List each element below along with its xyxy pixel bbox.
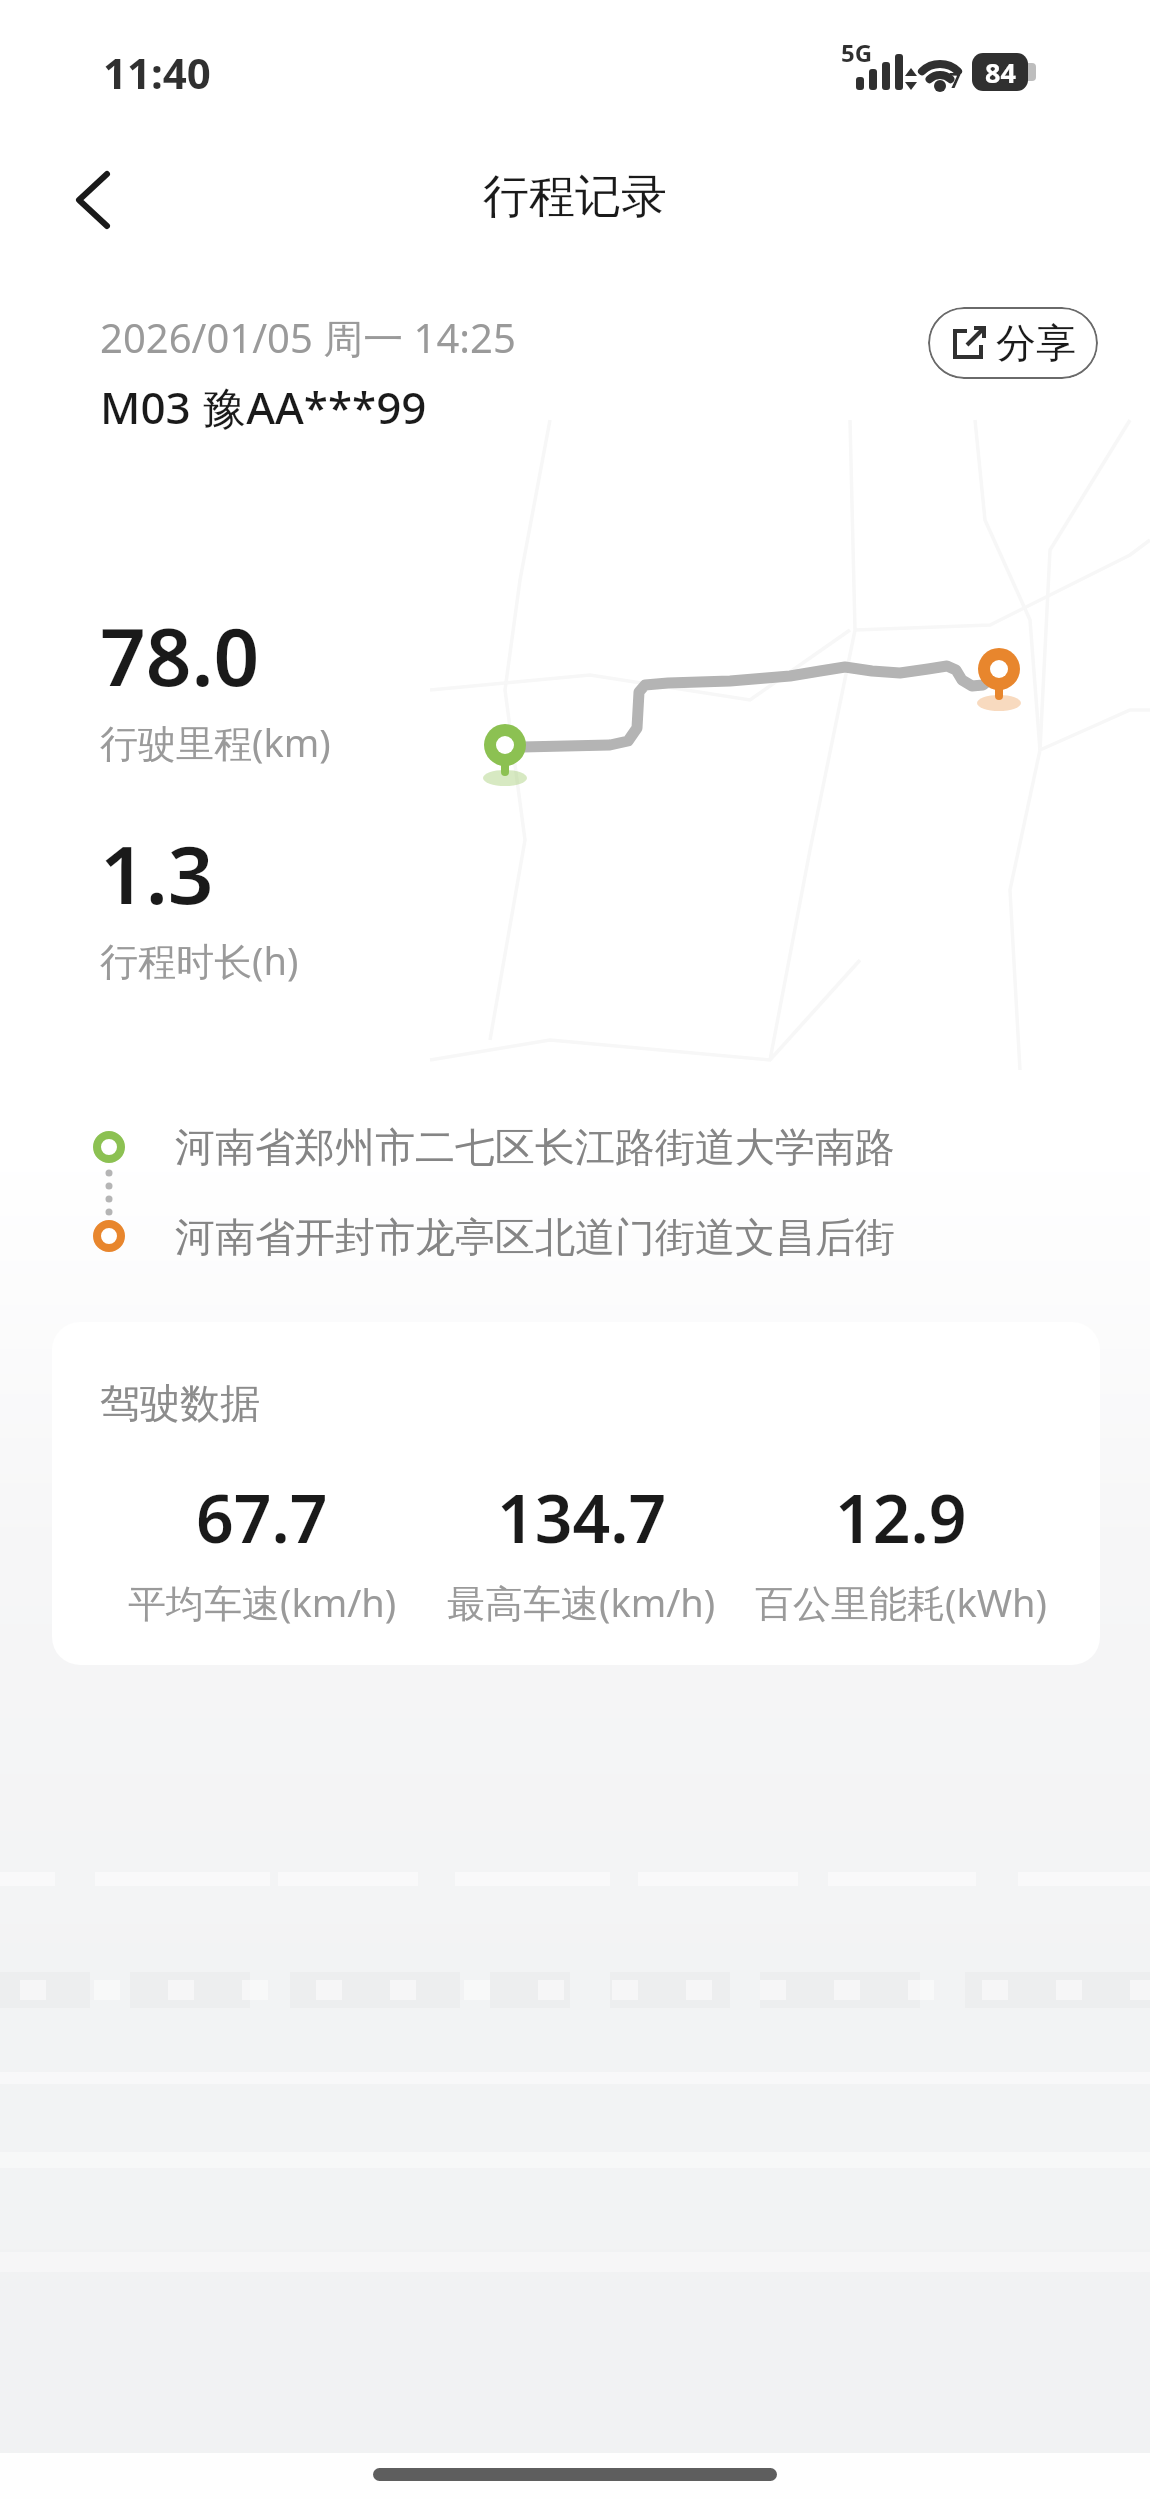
staticText: 河南省开封市龙亭区北道门街道文昌后街 xyxy=(175,1212,895,1262)
staticText: 行程记录 xyxy=(483,168,667,226)
staticText: 河南省郑州市二七区长江路街道大学南路 xyxy=(175,1122,895,1172)
button[interactable]: 分享 xyxy=(928,307,1098,379)
staticText: 1.3 xyxy=(100,818,214,927)
staticText: 分享 xyxy=(996,318,1076,368)
staticText: 百公里能耗(kWh) xyxy=(755,1576,1047,1628)
staticText: 最高车速(km/h) xyxy=(447,1576,716,1628)
staticText: 84 xyxy=(985,54,1016,91)
staticText: 行程时长(h) xyxy=(100,934,299,986)
staticText: 7 xyxy=(949,66,962,95)
staticText: 12.9 xyxy=(835,1472,967,1562)
staticText: 67.7 xyxy=(196,1472,328,1562)
staticText: 78.0 xyxy=(100,600,260,709)
staticText: M03 豫AA***99 xyxy=(100,377,427,437)
staticText: 134.7 xyxy=(497,1472,667,1562)
button[interactable] xyxy=(52,160,132,240)
staticText: 行驶里程(km) xyxy=(100,716,331,768)
staticText: 2026/01/05 周一 14:25 xyxy=(100,310,516,365)
staticText: 11:40 xyxy=(103,44,211,101)
staticText: 5G xyxy=(841,36,873,69)
staticText: 驾驶数据 xyxy=(100,1378,260,1428)
staticText: 平均车速(km/h) xyxy=(128,1576,397,1628)
